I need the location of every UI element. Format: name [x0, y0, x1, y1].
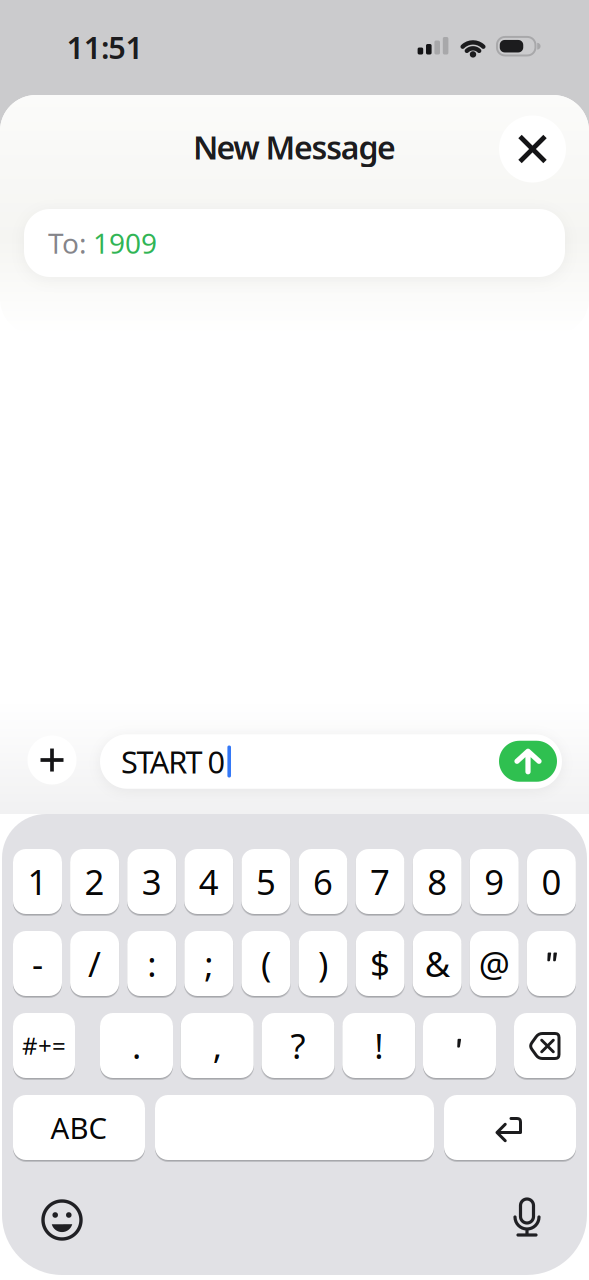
button[interactable]: 0 [527, 849, 576, 914]
button[interactable]: 2 [70, 849, 119, 914]
staticText: . [132, 1022, 141, 1068]
button[interactable]: " [527, 931, 576, 996]
button[interactable]: Delete [514, 1013, 576, 1078]
staticText: ! [374, 1022, 383, 1068]
button[interactable]: Close [499, 115, 566, 182]
button[interactable]: ABC [13, 1095, 145, 1160]
staticText: To: [48, 224, 87, 262]
staticText: New Message [193, 126, 396, 168]
button[interactable]: 3 [127, 849, 176, 914]
button[interactable]: Return [444, 1095, 576, 1160]
button[interactable]: 5 [241, 849, 290, 914]
staticText: : [147, 940, 156, 986]
staticText: ) [318, 940, 328, 986]
staticText: $ [370, 940, 390, 986]
staticText: 6 [313, 858, 333, 904]
staticText: 7 [370, 858, 390, 904]
staticText: ? [290, 1022, 305, 1068]
button[interactable]: ! [342, 1013, 415, 1078]
staticText: / [88, 940, 101, 986]
button[interactable]: - [13, 931, 62, 996]
button[interactable]: 1 [13, 849, 62, 914]
staticText: ABC [50, 1108, 107, 1147]
button[interactable]: ( [241, 931, 290, 996]
staticText: ; [204, 940, 213, 986]
button[interactable]: , [181, 1013, 254, 1078]
staticText: @ [479, 940, 510, 986]
button[interactable]: ; [184, 931, 233, 996]
button[interactable]: Add attachment [27, 735, 76, 784]
button[interactable]: 9 [470, 849, 519, 914]
button[interactable]: . [100, 1013, 173, 1078]
staticText: ( [261, 940, 271, 986]
button[interactable]: Space [155, 1095, 434, 1160]
staticText: 3 [142, 858, 162, 904]
staticText: - [32, 940, 43, 986]
button[interactable]: @ [470, 931, 519, 996]
button[interactable]: 8 [413, 849, 462, 914]
staticText: 9 [484, 858, 504, 904]
staticText: , [213, 1022, 222, 1068]
staticText: 2 [85, 858, 105, 904]
staticText: 4 [199, 858, 219, 904]
button[interactable]: & [413, 931, 462, 996]
button[interactable]: 6 [298, 849, 347, 914]
button[interactable]: ' [423, 1013, 496, 1078]
button[interactable]: Dictate [505, 1199, 549, 1243]
staticText: 1 [27, 858, 47, 904]
button[interactable]: #+= [13, 1013, 75, 1078]
staticText: #+= [22, 1030, 66, 1061]
button[interactable]: ) [298, 931, 347, 996]
staticText: 8 [427, 858, 447, 904]
button[interactable]: Send [499, 741, 557, 782]
button[interactable]: Emoji [40, 1198, 84, 1242]
staticText: 1909 [93, 224, 157, 262]
button[interactable]: 4 [184, 849, 233, 914]
staticText: 5 [256, 858, 276, 904]
button[interactable]: / [70, 931, 119, 996]
staticText: & [425, 940, 450, 986]
button[interactable]: ? [261, 1013, 334, 1078]
staticText: 0 [541, 858, 561, 904]
button[interactable]: 7 [356, 849, 405, 914]
staticText: 11:51 [67, 27, 143, 67]
button[interactable]: $ [356, 931, 405, 996]
staticText: START 0 [121, 741, 225, 782]
button[interactable]: : [127, 931, 176, 996]
